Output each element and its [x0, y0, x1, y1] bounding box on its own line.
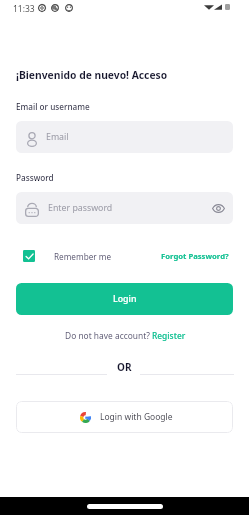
staticText: Login with Google [100, 411, 173, 423]
staticText: Enter password [48, 202, 113, 214]
button[interactable]: Remember me [16, 250, 112, 262]
staticText: Remember me [54, 251, 112, 262]
staticText: OR [117, 360, 132, 374]
staticText: Email or username [16, 101, 90, 112]
staticText: Email [46, 131, 69, 143]
staticText: 11:33 [13, 3, 35, 15]
staticText: Do not have account? [65, 330, 152, 341]
button[interactable]: Login [16, 283, 233, 315]
button[interactable]: Forgot Password? [161, 251, 233, 261]
staticText: Forgot Password? [161, 251, 229, 261]
button[interactable]: Login with Google [16, 401, 233, 433]
button[interactable]: Email [16, 121, 233, 153]
staticText: Password [16, 172, 54, 183]
button[interactable]: Register [152, 330, 186, 341]
staticText: Register [152, 330, 186, 341]
staticText: ¡Bienvenido de nuevo! Acceso [16, 68, 168, 82]
button[interactable]: Enter password [16, 192, 233, 224]
staticText: Login [113, 293, 137, 305]
button[interactable]: Show password [211, 201, 225, 215]
